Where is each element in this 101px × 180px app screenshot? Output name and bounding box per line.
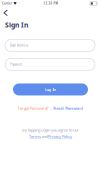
staticText: and — [41, 134, 47, 139]
staticText: 12:30 PM — [43, 2, 57, 5]
staticText: Log In — [44, 87, 56, 92]
staticText: | — [50, 105, 52, 111]
staticText: Carrier — [2, 2, 12, 5]
button[interactable]: Password — [5, 58, 95, 70]
staticText: Forgot Password? — [18, 105, 49, 111]
button[interactable]: Back — [0, 9, 14, 17]
staticText: Sign In — [5, 21, 28, 29]
staticText: Password — [10, 63, 22, 66]
button[interactable]: Log In — [13, 83, 88, 95]
button[interactable]: Terms — [29, 134, 41, 139]
button[interactable]: Privacy Policy — [48, 134, 72, 139]
staticText: By tapping Login you agree to our — [22, 127, 79, 133]
button[interactable]: Forgot Password? — [18, 105, 49, 111]
staticText: Reset Password — [53, 105, 83, 111]
button[interactable]: Email Address — [5, 39, 95, 51]
button[interactable]: Reset Password — [53, 105, 83, 111]
staticText: Terms — [29, 134, 41, 139]
staticText: Email Address — [10, 44, 28, 47]
staticText: Privacy Policy — [48, 134, 72, 139]
